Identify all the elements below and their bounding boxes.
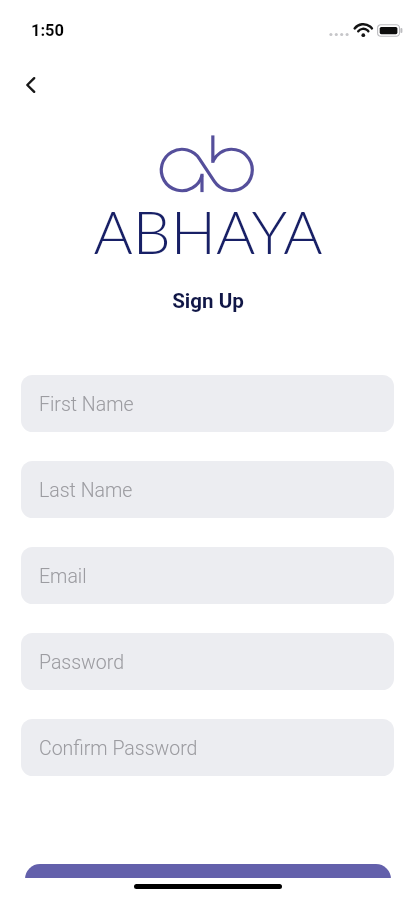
staticText: First Name xyxy=(39,393,134,416)
staticText: Email xyxy=(39,565,87,588)
staticText: 1:50 xyxy=(31,21,65,40)
staticText: Confirm Password xyxy=(39,737,198,760)
staticText: Sign Up xyxy=(172,289,244,313)
button[interactable]: Back xyxy=(13,70,45,102)
button[interactable]: Password xyxy=(21,633,394,690)
button[interactable]: Confirm Password xyxy=(21,719,394,776)
button[interactable]: Email xyxy=(21,547,394,604)
staticText: ABHAYA xyxy=(93,195,323,267)
staticText: Last Name xyxy=(39,479,133,502)
button[interactable]: Last Name xyxy=(21,461,394,518)
button[interactable]: First Name xyxy=(21,375,394,432)
button[interactable] xyxy=(25,864,391,900)
staticText: Password xyxy=(39,651,124,674)
